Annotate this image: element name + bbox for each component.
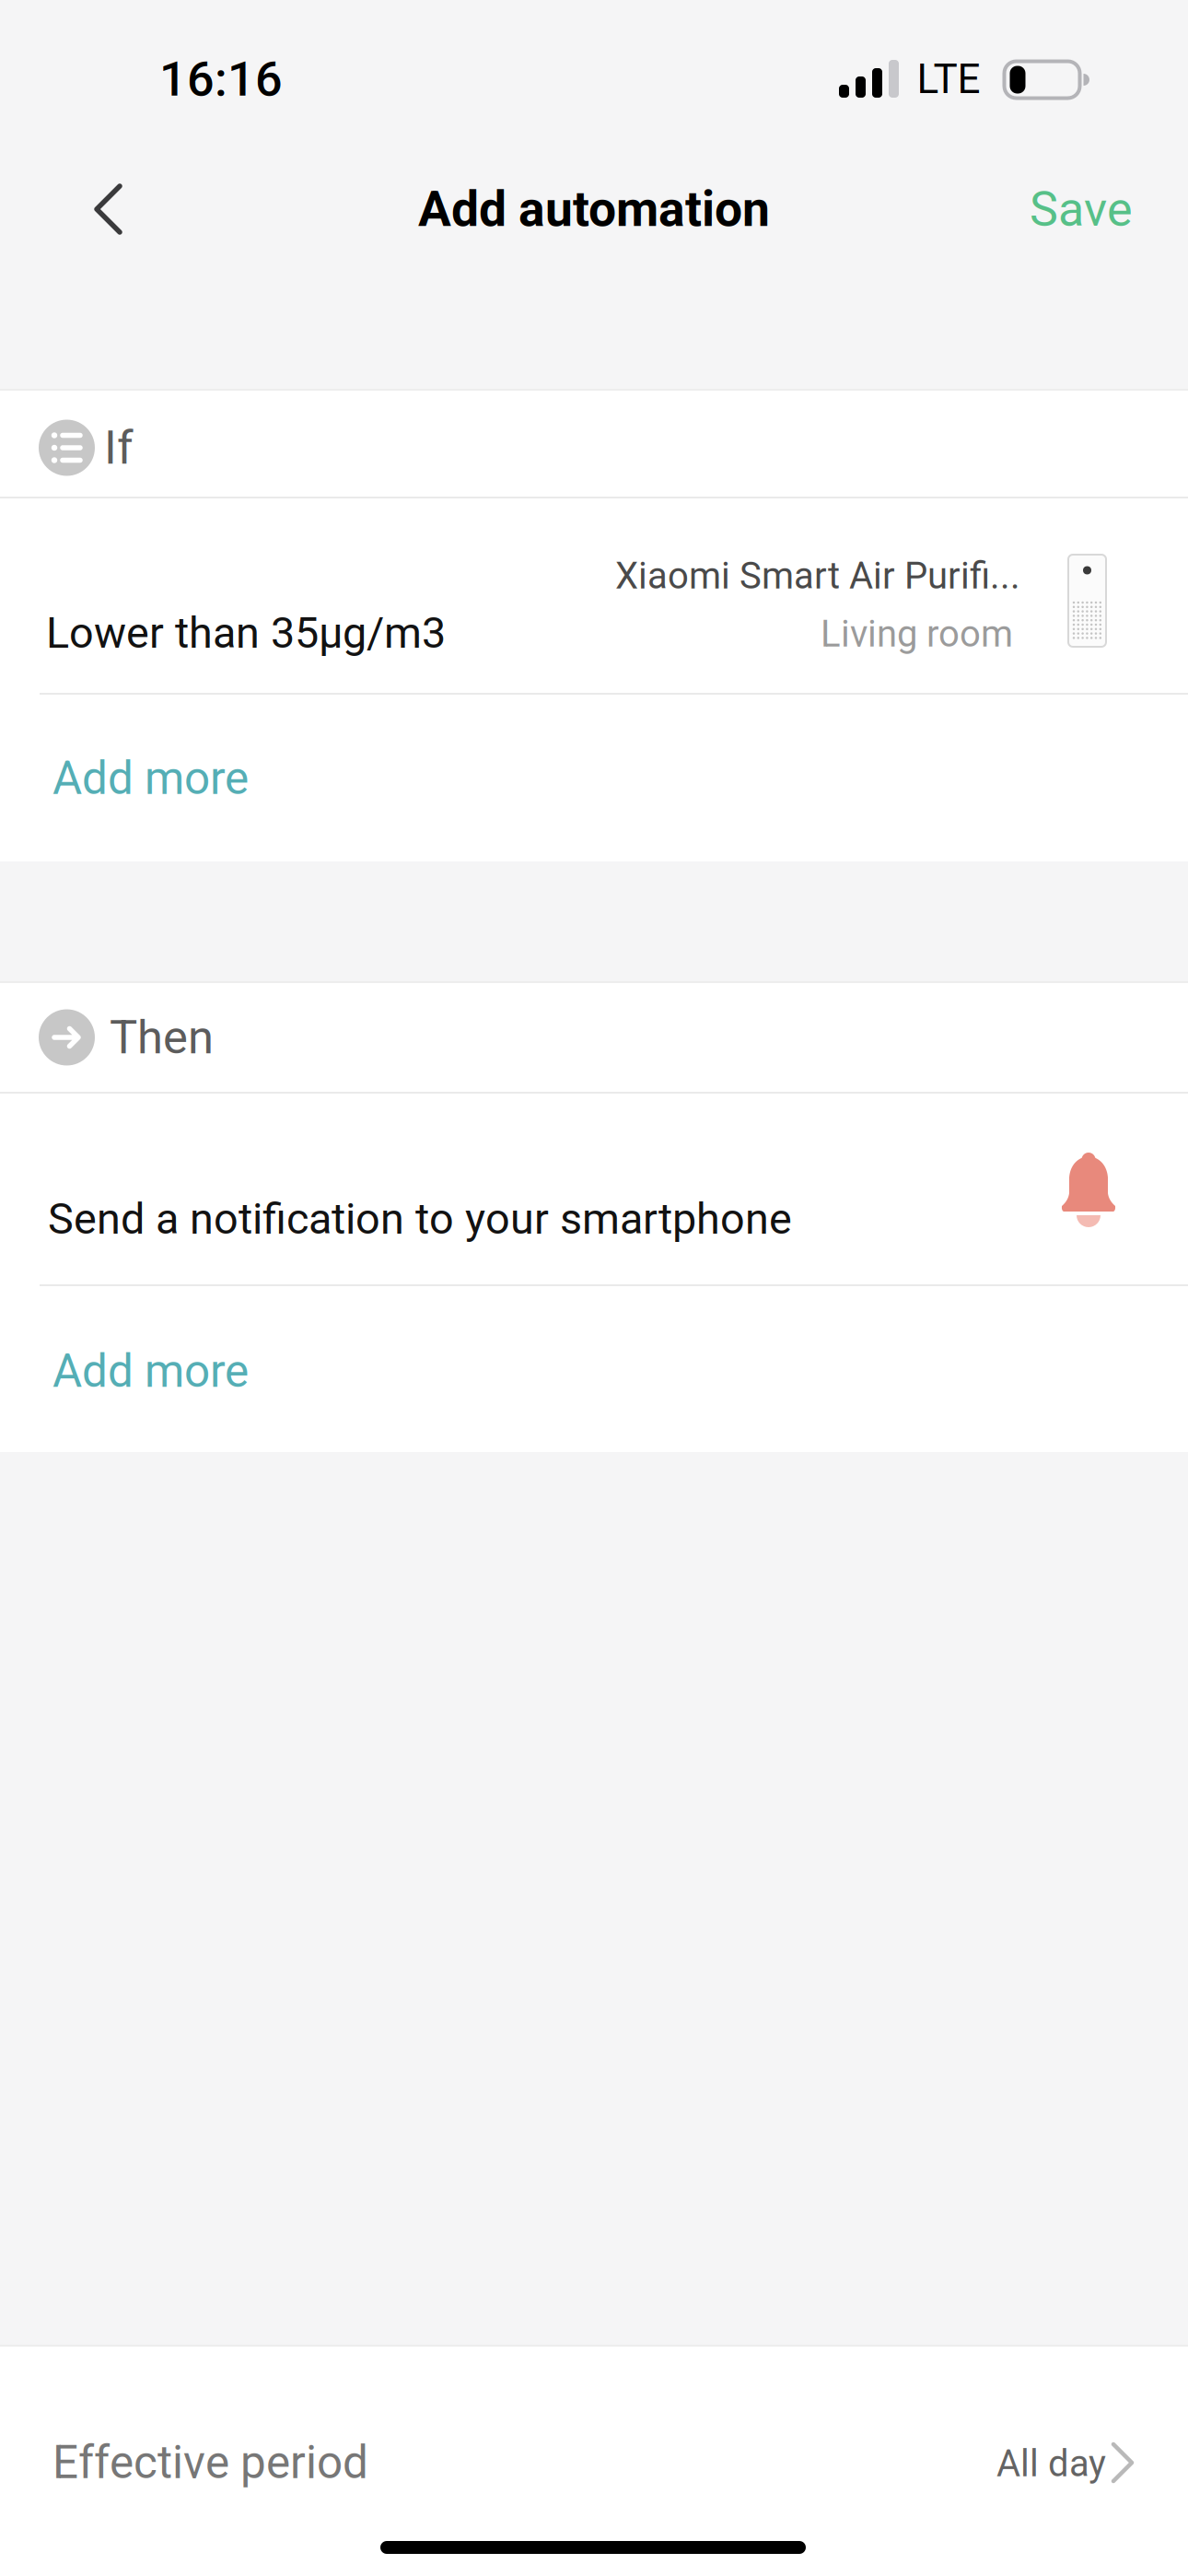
- staticText: Lower than 35μg/m3: [46, 608, 446, 657]
- button[interactable]: Lower than 35μg/m3: [0, 498, 1188, 694]
- button[interactable]: Add more: [0, 695, 1188, 857]
- staticText: LTE: [917, 56, 980, 102]
- button[interactable]: Add more: [0, 1286, 1188, 1452]
- staticText: Add more: [52, 1345, 249, 1397]
- staticText: All day: [996, 2443, 1106, 2485]
- staticText: 16:16: [159, 52, 283, 107]
- staticText: Send a notification to your smartphone: [48, 1194, 792, 1243]
- button[interactable]: Effective period: [0, 2348, 1188, 2574]
- staticText: Save: [1030, 182, 1133, 237]
- button[interactable]: Save: [967, 163, 1133, 255]
- staticText: Then: [110, 1011, 214, 1064]
- button[interactable]: Send a notification to your smartphone: [0, 1093, 1188, 1284]
- staticText: Add more: [52, 753, 249, 804]
- staticText: Xiaomi Smart Air Purifi...: [615, 555, 1020, 597]
- button[interactable]: [67, 169, 148, 250]
- staticText: Add automation: [418, 181, 770, 237]
- staticText: If: [104, 421, 134, 474]
- staticText: Living room: [821, 613, 1013, 655]
- staticText: Effective period: [52, 2437, 368, 2489]
